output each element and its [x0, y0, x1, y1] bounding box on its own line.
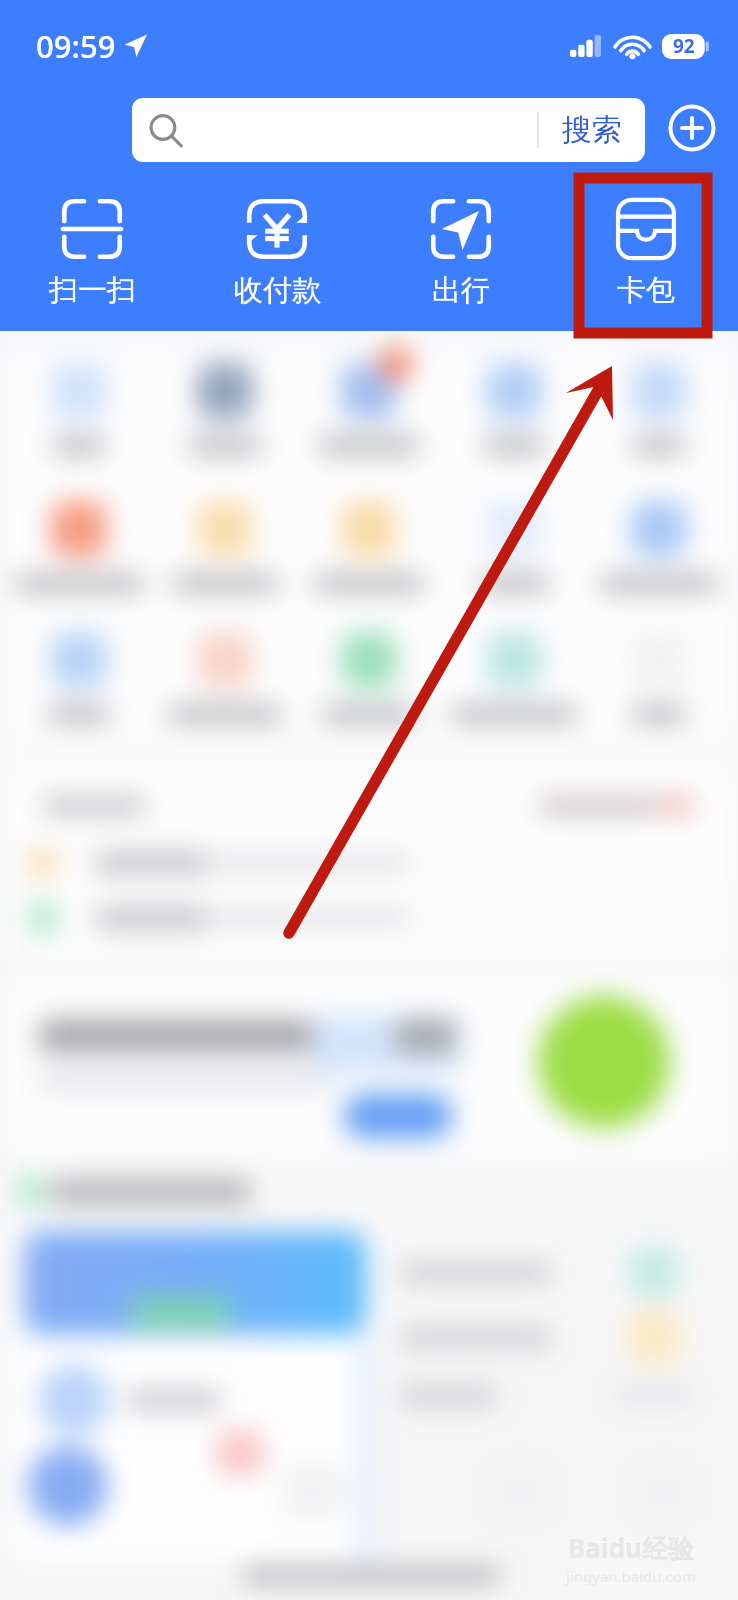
- staticText: jingyan.baidu.com: [566, 1566, 696, 1586]
- button[interactable]: Card package: [571, 198, 721, 309]
- button[interactable]: 搜索: [539, 98, 645, 162]
- staticText: 92: [673, 33, 695, 59]
- button[interactable]: Pay: [202, 198, 352, 309]
- button[interactable]: 搜索: [132, 98, 645, 162]
- staticText: 出行: [432, 272, 490, 309]
- staticText: 搜索: [562, 111, 622, 149]
- button[interactable]: Scan: [17, 198, 167, 309]
- button[interactable]: Travel: [386, 198, 536, 309]
- button[interactable]: Add: [669, 105, 715, 151]
- staticText: 卡包: [617, 272, 675, 309]
- staticText: Baidu经验: [568, 1530, 694, 1566]
- staticText: 扫一扫: [49, 272, 136, 309]
- staticText: 收付款: [234, 272, 321, 309]
- staticText: 09:59: [36, 25, 116, 67]
